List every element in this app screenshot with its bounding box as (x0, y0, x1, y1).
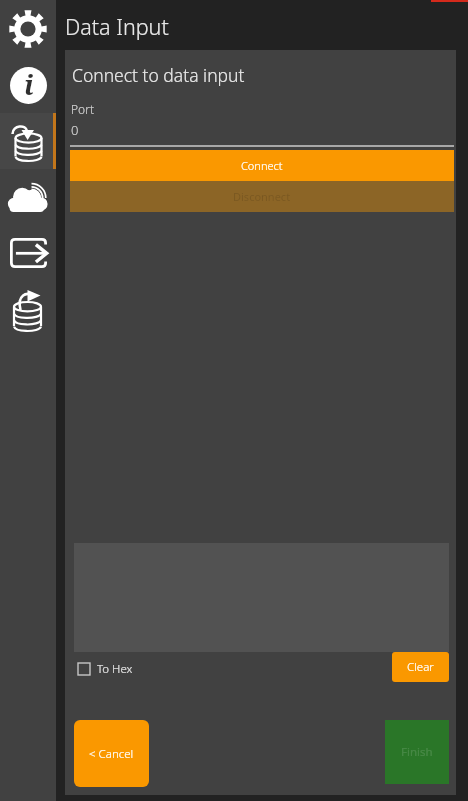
button[interactable]: Connect (70, 150, 454, 181)
staticText: Clear (407, 659, 434, 675)
button[interactable]: Settings (0, 1, 56, 57)
button[interactable]: Export (0, 225, 56, 281)
staticText: To Hex (97, 661, 133, 677)
button[interactable]: Cloud (0, 169, 56, 225)
button[interactable]: Data output (0, 281, 56, 337)
button[interactable]: Finish (385, 720, 449, 784)
staticText: Data Input (65, 12, 169, 41)
staticText: Disconnect (233, 189, 291, 204)
staticText: Finish (401, 744, 433, 760)
staticText: Port (71, 101, 94, 117)
button[interactable]: < Cancel (74, 720, 149, 787)
button[interactable]: Clear (392, 652, 449, 682)
button[interactable]: Data input (0, 113, 56, 169)
staticText: 0 (71, 121, 79, 139)
staticText: < Cancel (89, 746, 134, 762)
staticText: Connect (241, 158, 283, 173)
button[interactable]: To Hex (78, 661, 133, 677)
staticText: Connect to data input (72, 63, 245, 87)
button[interactable]: About (0, 57, 56, 113)
staticText: i (24, 66, 34, 103)
